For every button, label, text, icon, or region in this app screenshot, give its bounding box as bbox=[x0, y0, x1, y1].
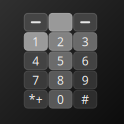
staticText: 1 bbox=[32, 33, 39, 49]
staticText: # bbox=[81, 91, 89, 107]
button[interactable]: *+ bbox=[24, 90, 47, 108]
button[interactable]: Minus bbox=[24, 13, 47, 31]
staticText: *+ bbox=[29, 91, 43, 107]
button[interactable]: Display bbox=[49, 13, 72, 31]
button[interactable]: 1 bbox=[24, 33, 47, 50]
button[interactable]: 2 bbox=[49, 33, 72, 50]
staticText: 3 bbox=[82, 33, 89, 49]
button[interactable]: 4 bbox=[24, 52, 47, 69]
staticText: 8 bbox=[57, 72, 64, 88]
staticText: 2 bbox=[57, 33, 64, 49]
button[interactable]: 5 bbox=[49, 52, 72, 69]
staticText: 5 bbox=[57, 53, 64, 69]
button[interactable]: 9 bbox=[74, 71, 97, 89]
staticText: 6 bbox=[82, 53, 89, 69]
staticText: 9 bbox=[82, 72, 89, 88]
button[interactable]: Delete bbox=[74, 13, 97, 31]
staticText: 7 bbox=[32, 72, 39, 88]
button[interactable]: 8 bbox=[49, 71, 72, 89]
staticText: 0 bbox=[57, 91, 64, 107]
button[interactable]: # bbox=[74, 90, 97, 108]
staticText: 4 bbox=[32, 53, 39, 69]
button[interactable]: 7 bbox=[24, 71, 47, 89]
button[interactable]: 3 bbox=[74, 33, 97, 50]
button[interactable]: 0 bbox=[49, 90, 72, 108]
button[interactable]: 6 bbox=[74, 52, 97, 69]
